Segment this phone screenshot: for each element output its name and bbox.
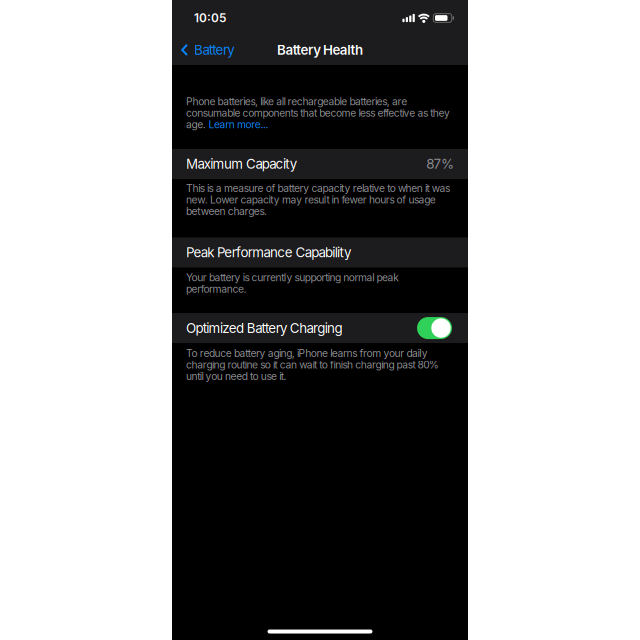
- staticText: 10:05: [194, 11, 226, 25]
- staticText: Your battery is currently supporting nor…: [186, 271, 399, 284]
- staticText: Battery: [194, 42, 234, 58]
- staticText: new. Lower capacity may result in fewer …: [186, 193, 436, 206]
- staticText: This is a measure of battery capacity re…: [186, 182, 450, 194]
- staticText: charging routine so it can wait to finis…: [186, 359, 439, 371]
- staticText: 87%: [426, 156, 454, 172]
- staticText: until you need to use it.: [186, 370, 286, 382]
- staticText: Battery Health: [277, 42, 363, 58]
- staticText: consumable components that become less e…: [186, 107, 450, 119]
- staticText: age.: [186, 118, 208, 131]
- staticText: Peak Performance Capability: [186, 244, 351, 260]
- staticText: Optimized Battery Charging: [186, 320, 342, 336]
- button[interactable]: Learn more...: [208, 118, 269, 131]
- staticText: Learn more...: [208, 118, 269, 131]
- staticText: Phone batteries, like all rechargeable b…: [186, 95, 407, 108]
- staticText: Maximum Capacity: [186, 156, 297, 172]
- staticText: To reduce battery aging, iPhone learns f…: [186, 347, 428, 359]
- staticText: performance.: [186, 283, 247, 295]
- button[interactable]: Back: [172, 42, 234, 58]
- staticText: between charges.: [186, 205, 267, 217]
- button[interactable]: Optimized Battery Charging: [417, 317, 452, 339]
